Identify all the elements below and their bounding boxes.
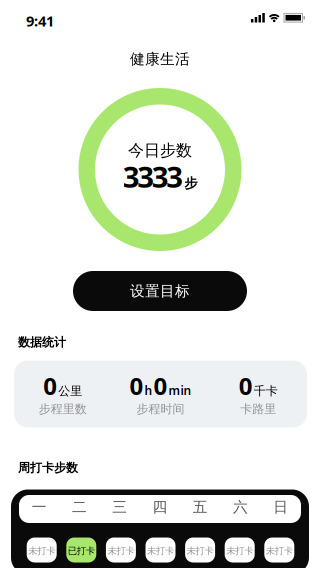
staticText: 未打卡: [107, 545, 134, 557]
staticText: 3333: [123, 157, 183, 196]
staticText: 三: [112, 498, 127, 516]
staticText: 0: [129, 370, 143, 402]
staticText: 9:41: [26, 11, 54, 30]
staticText: 六: [233, 498, 248, 516]
staticText: 已打卡: [68, 545, 95, 557]
staticText: 未打卡: [266, 545, 293, 557]
button[interactable]: 未打卡: [106, 537, 136, 562]
button[interactable]: 未打卡: [264, 537, 294, 562]
staticText: 步: [184, 175, 197, 191]
staticText: 数据统计: [18, 335, 66, 350]
staticText: 0: [43, 370, 57, 402]
staticText: 未打卡: [147, 545, 174, 557]
staticText: 五: [193, 498, 208, 516]
staticText: 步程时间: [136, 402, 184, 416]
button[interactable]: 未打卡: [145, 537, 175, 562]
staticText: 二: [72, 498, 87, 516]
button[interactable]: 未打卡: [225, 537, 255, 562]
button[interactable]: 设置目标: [73, 271, 247, 311]
staticText: 未打卡: [28, 545, 55, 557]
staticText: 未打卡: [187, 545, 214, 557]
staticText: 0: [153, 370, 167, 402]
staticText: 今日步数: [128, 141, 192, 160]
staticText: 一: [32, 498, 47, 516]
staticText: 卡路里: [240, 402, 276, 416]
staticText: 步程里数: [39, 402, 87, 416]
staticText: 千卡: [254, 384, 278, 398]
staticText: 公里: [58, 384, 82, 398]
staticText: 0: [239, 370, 253, 402]
staticText: 四: [152, 498, 167, 516]
staticText: min: [168, 382, 191, 398]
staticText: 设置目标: [130, 282, 190, 300]
button[interactable]: 未打卡: [185, 537, 215, 562]
staticText: 日: [273, 498, 288, 516]
staticText: 健康生活: [130, 50, 190, 68]
staticText: 周打卡步数: [18, 460, 78, 475]
staticText: h: [144, 382, 152, 398]
button[interactable]: 已打卡: [66, 537, 96, 562]
staticText: 未打卡: [226, 545, 253, 557]
button[interactable]: 未打卡: [27, 537, 57, 562]
